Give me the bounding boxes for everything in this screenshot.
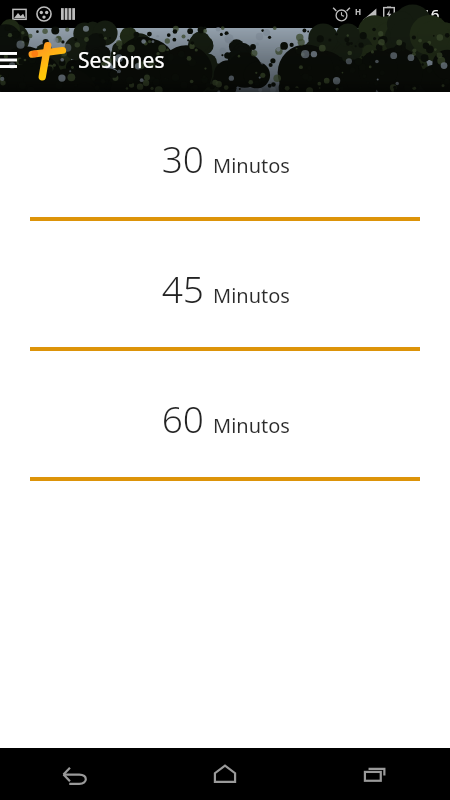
staticText: Minutos (213, 282, 290, 309)
button[interactable]: 60 (0, 352, 450, 482)
button[interactable]: Home (150, 748, 300, 800)
staticText: H (355, 6, 362, 17)
button[interactable]: Recent apps (300, 748, 450, 800)
staticText: Sesiones (78, 46, 165, 75)
button[interactable]: Back (0, 748, 150, 800)
staticText: Minutos (213, 412, 290, 439)
staticText: 13:16 (401, 4, 440, 24)
staticText: 30 (161, 133, 204, 183)
staticText: Minutos (213, 152, 290, 179)
staticText: 60 (161, 393, 204, 443)
button[interactable]: 45 (0, 222, 450, 352)
button[interactable]: 30 (0, 92, 450, 222)
staticText: 45 (161, 263, 204, 313)
button[interactable]: Open navigation menu (0, 28, 22, 92)
